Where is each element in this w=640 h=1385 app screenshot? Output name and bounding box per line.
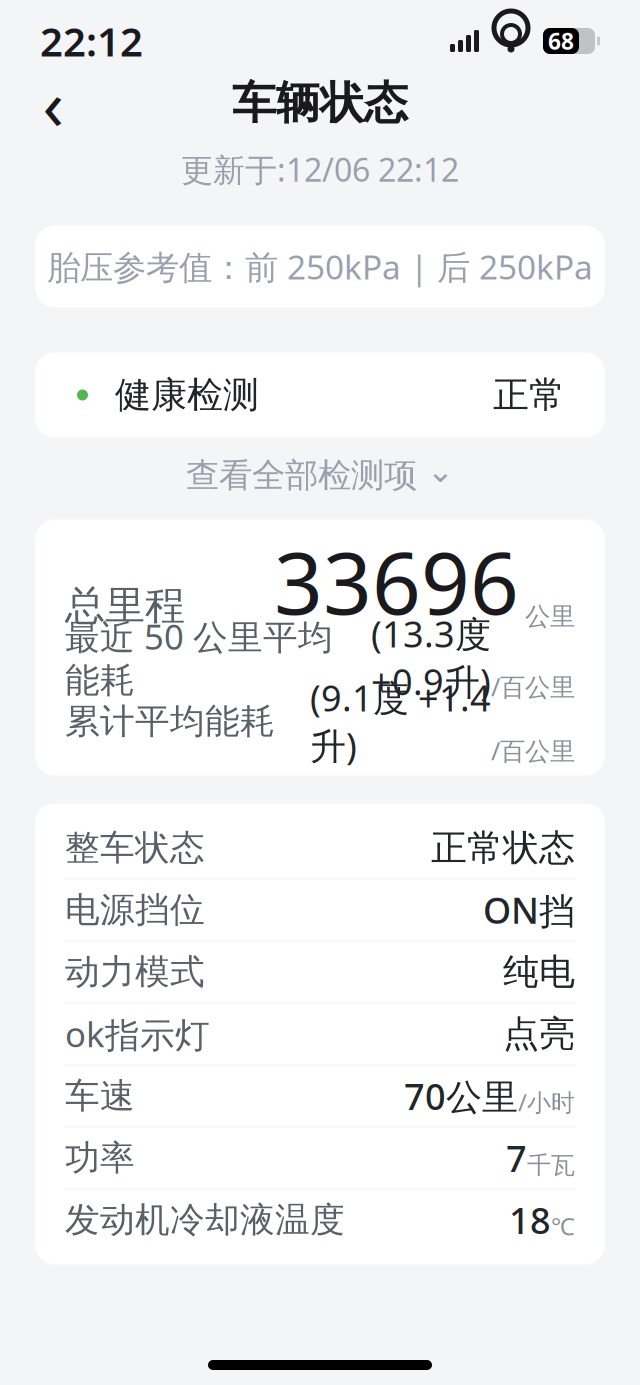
staticText: 7: [506, 1134, 527, 1182]
staticText: 千瓦: [527, 1150, 575, 1180]
button[interactable]: Back: [22, 72, 84, 134]
staticText: 公里: [525, 601, 575, 632]
staticText: ok指示灯: [65, 1011, 210, 1057]
staticText: 累计平均能耗: [65, 700, 275, 743]
staticText: 更新于:12/06 22:12: [181, 148, 459, 190]
staticText: /百公里: [491, 734, 575, 767]
staticText: (13.3度 +0.9升): [371, 610, 491, 705]
staticText: 功率: [65, 1137, 135, 1179]
staticText: ℃: [551, 1210, 575, 1242]
staticText: 发动机冷却液温度: [65, 1199, 345, 1241]
staticText: 68: [548, 26, 574, 56]
staticText: /百公里: [491, 670, 575, 703]
staticText: 健康检测: [115, 373, 259, 417]
staticText: 胎压参考值：前 250kPa | 后 250kPa: [47, 244, 593, 289]
staticText: 查看全部检测项: [186, 455, 417, 496]
staticText: 正常: [493, 373, 565, 417]
staticText: 总里程: [65, 581, 185, 630]
staticText: 动力模式: [65, 951, 205, 993]
button[interactable]: 健康检测: [35, 352, 605, 437]
staticText: 点亮: [503, 1012, 575, 1056]
staticText: ⌄: [427, 453, 454, 489]
staticText: 70公里: [404, 1072, 518, 1120]
staticText: ON挡: [483, 886, 575, 934]
staticText: 最近 50 公里平均能耗: [65, 613, 333, 702]
staticText: 33696: [274, 525, 519, 638]
staticText: 18: [509, 1196, 551, 1244]
staticText: /小时: [518, 1086, 575, 1118]
staticText: 车辆状态: [232, 76, 408, 130]
staticText: 纯电: [503, 950, 575, 994]
staticText: 正常状态: [431, 826, 575, 870]
staticText: ‹: [42, 57, 63, 149]
staticText: 电源挡位: [65, 889, 205, 931]
staticText: 22:12: [40, 14, 143, 67]
staticText: (9.1度 +1.4升): [310, 674, 491, 769]
staticText: 整车状态: [65, 827, 205, 869]
button[interactable]: 查看全部检测项: [156, 449, 484, 501]
staticText: 车速: [65, 1075, 135, 1117]
